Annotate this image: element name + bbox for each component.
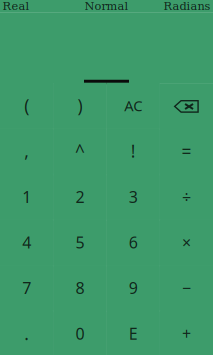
button[interactable]: 0 <box>53 311 106 355</box>
button[interactable]: + <box>160 311 213 355</box>
button[interactable]: ) <box>53 83 106 128</box>
button[interactable]: 5 <box>53 219 106 265</box>
button[interactable]: , <box>0 128 53 174</box>
button[interactable]: 7 <box>0 265 53 311</box>
staticText: ! <box>131 140 136 163</box>
staticText: AC <box>124 96 142 115</box>
staticText: 5 <box>75 232 84 253</box>
staticText: ÷ <box>182 186 191 207</box>
staticText: 0 <box>75 323 84 344</box>
button[interactable]: 1 <box>0 174 53 219</box>
button[interactable]: ^ <box>53 128 106 174</box>
button[interactable]: 3 <box>106 174 160 219</box>
staticText: 9 <box>129 277 138 298</box>
staticText: . <box>24 322 29 345</box>
button[interactable]: Delete <box>160 84 213 129</box>
staticText: ^ <box>75 140 85 163</box>
staticText: + <box>182 323 191 344</box>
button[interactable]: . <box>0 311 53 355</box>
staticText: 3 <box>129 186 138 207</box>
staticText: 1 <box>22 186 31 207</box>
staticText: 4 <box>22 232 31 253</box>
button[interactable]: AC <box>106 83 160 128</box>
staticText: , <box>24 140 29 163</box>
button[interactable]: ÷ <box>160 174 213 219</box>
staticText: Radians <box>163 0 210 13</box>
button[interactable]: E <box>106 311 160 355</box>
staticText: ) <box>77 94 82 117</box>
staticText: Normal <box>84 0 128 13</box>
staticText: = <box>181 140 191 163</box>
button[interactable]: ( <box>0 83 53 128</box>
button[interactable]: ! <box>106 128 160 174</box>
button[interactable]: 6 <box>106 219 160 265</box>
button[interactable]: 8 <box>53 265 106 311</box>
staticText: E <box>129 323 138 344</box>
staticText: Real <box>2 0 29 13</box>
button[interactable]: × <box>160 219 213 265</box>
button[interactable]: Real <box>2 0 70 12</box>
button[interactable]: 2 <box>53 174 106 219</box>
button[interactable]: 9 <box>106 265 160 311</box>
button[interactable]: 4 <box>0 219 53 265</box>
staticText: 6 <box>129 232 138 253</box>
button[interactable]: = <box>160 128 213 174</box>
staticText: ( <box>24 94 29 117</box>
staticText: 2 <box>75 186 84 207</box>
staticText: 7 <box>22 277 31 298</box>
button[interactable]: Radians <box>142 0 210 12</box>
staticText: 8 <box>75 277 84 298</box>
button[interactable]: − <box>160 265 213 311</box>
staticText: − <box>182 277 191 298</box>
staticText: × <box>182 232 191 253</box>
button[interactable]: Normal <box>72 0 140 12</box>
